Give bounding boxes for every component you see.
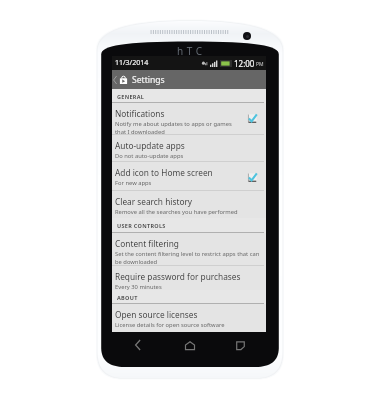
staticText: USER CONTROLS xyxy=(117,222,166,229)
staticText: Settings xyxy=(132,74,165,86)
button[interactable]: Back xyxy=(112,330,164,360)
button[interactable]: Auto-update apps xyxy=(112,135,266,162)
staticText: PM xyxy=(256,61,264,68)
staticText: License details for open source software xyxy=(115,321,225,329)
staticText: Set the content filtering level to restr… xyxy=(115,250,262,265)
button[interactable]: Recent apps xyxy=(215,330,266,360)
staticText: For new apps xyxy=(115,179,152,187)
staticText: Clear search history xyxy=(115,196,193,207)
staticText: ABOUT xyxy=(117,294,138,301)
staticText: Add icon to Home screen xyxy=(115,167,213,178)
button[interactable]: Open source licenses xyxy=(112,304,266,332)
staticText: hTC xyxy=(177,44,206,58)
staticText: Auto-update apps xyxy=(115,140,185,151)
staticText: Require password for purchases xyxy=(115,271,241,282)
other: Navigate up xyxy=(113,76,117,84)
staticText: 11/3/2014 xyxy=(115,58,149,68)
staticText: Notifications xyxy=(115,108,165,119)
staticText: Open source licenses xyxy=(115,309,198,320)
button[interactable]: Notifications xyxy=(112,103,266,135)
button[interactable]: Clear search history xyxy=(112,191,266,218)
staticText: Do not auto-update apps xyxy=(115,152,184,160)
staticText: GENERAL xyxy=(117,93,145,100)
staticText: 12:00 xyxy=(234,58,255,69)
staticText: Notify me about updates to apps or games… xyxy=(115,120,239,135)
staticText: Remove all the searches you have perform… xyxy=(115,208,238,216)
button[interactable]: Require password for purchases xyxy=(112,266,266,290)
button[interactable]: Home xyxy=(164,330,215,360)
button[interactable]: Add icon to Home screen xyxy=(112,162,266,191)
staticText: Content filtering xyxy=(115,238,179,249)
button[interactable]: Navigate up xyxy=(112,70,266,89)
button[interactable]: Content filtering xyxy=(112,233,266,266)
staticText: Every 30 minutes xyxy=(115,283,162,291)
